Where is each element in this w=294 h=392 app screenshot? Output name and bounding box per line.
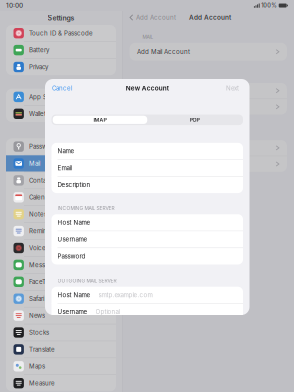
- button[interactable]: Host Name: [51, 287, 243, 303]
- button[interactable]: Translate: [6, 341, 116, 358]
- button[interactable]: Reminders: [6, 223, 116, 239]
- staticText: News: [29, 312, 45, 319]
- staticText: OUTGOING MAIL SERVER: [57, 278, 116, 284]
- button[interactable]: Account: [129, 156, 287, 172]
- button[interactable]: Contacts: [6, 172, 116, 189]
- staticText: Username: [57, 236, 87, 243]
- button[interactable]: Account: [129, 83, 287, 98]
- staticText: Contacts: [29, 177, 55, 184]
- button[interactable]: POP: [147, 116, 242, 124]
- staticText: Username: [57, 308, 87, 315]
- button[interactable]: Password: [51, 248, 243, 264]
- staticText: Email: [57, 164, 71, 172]
- staticText: Next: [226, 84, 239, 92]
- button[interactable]: News: [6, 307, 116, 324]
- button[interactable]: Maps: [6, 358, 116, 374]
- button[interactable]: Host Name: [51, 214, 243, 231]
- staticText: Calendar: [29, 194, 54, 201]
- staticText: Touch ID & Passcode: [29, 29, 93, 37]
- staticText: MAIL: [142, 34, 153, 40]
- button[interactable]: Next: [221, 80, 249, 96]
- button[interactable]: Username: [51, 304, 243, 320]
- staticText: Messages: [29, 261, 59, 269]
- button[interactable]: Description: [51, 177, 243, 193]
- staticText: FaceTime: [29, 278, 56, 285]
- staticText: 100%: [261, 2, 277, 9]
- staticText: Notes: [29, 210, 47, 218]
- staticText: Host Name: [57, 291, 90, 299]
- button[interactable]: App Store: [6, 89, 116, 105]
- staticText: Cancel: [52, 84, 72, 92]
- staticText: Translate: [29, 346, 55, 353]
- button[interactable]: Safari: [6, 290, 116, 307]
- staticText: INCOMING MAIL SERVER: [57, 205, 114, 211]
- staticText: Privacy: [29, 63, 48, 71]
- button[interactable]: Voice Memos: [6, 240, 116, 256]
- button[interactable]: Add Mail Account: [129, 43, 287, 61]
- button[interactable]: Cancel: [45, 80, 77, 96]
- staticText: Add Account: [189, 14, 231, 21]
- staticText: Reminders: [29, 227, 60, 235]
- staticText: Add Account: [136, 14, 176, 21]
- staticText: App Store: [29, 93, 59, 101]
- staticText: POP: [189, 117, 199, 123]
- button[interactable]: Username: [51, 231, 243, 248]
- staticText: Description: [57, 181, 90, 188]
- button[interactable]: Name: [51, 143, 243, 159]
- button[interactable]: Mail: [6, 155, 116, 172]
- button[interactable]: Notes: [6, 206, 116, 222]
- staticText: Name: [57, 147, 74, 155]
- staticText: Optional: [95, 308, 119, 315]
- staticText: IMAP: [93, 117, 106, 123]
- button[interactable]: Calendar: [6, 189, 116, 205]
- staticText: Stocks: [29, 329, 49, 336]
- staticText: 10:00: [6, 2, 23, 9]
- staticText: Add Mail Account: [137, 48, 190, 55]
- button[interactable]: Account: [129, 140, 287, 156]
- staticText: Safari: [29, 295, 44, 302]
- staticText: Password: [57, 252, 85, 260]
- staticText: Wallet: [29, 110, 46, 117]
- button[interactable]: Messages: [6, 257, 116, 273]
- button[interactable]: Email: [51, 160, 243, 176]
- staticText: smtp.example.com: [98, 291, 152, 299]
- staticText: Voice Memos: [29, 244, 70, 252]
- staticText: New Account: [126, 84, 169, 92]
- staticText: Mail: [29, 160, 40, 167]
- button[interactable]: Wallet: [6, 106, 116, 122]
- button[interactable]: Stocks: [6, 324, 116, 341]
- staticText: Battery: [29, 46, 49, 54]
- button[interactable]: Measure: [6, 375, 116, 391]
- staticText: Passwords: [29, 143, 60, 150]
- button[interactable]: Passwords: [6, 138, 116, 155]
- button[interactable]: Privacy: [6, 59, 116, 75]
- staticText: Host Name: [57, 219, 90, 226]
- button[interactable]: Account: [129, 99, 287, 115]
- button[interactable]: Touch ID & Passcode: [6, 25, 116, 41]
- button[interactable]: FaceTime: [6, 274, 116, 290]
- button[interactable]: Battery: [6, 42, 116, 58]
- button[interactable]: Add Account: [129, 10, 189, 25]
- staticText: Maps: [29, 363, 45, 370]
- staticText: Settings: [47, 14, 74, 22]
- button[interactable]: IMAP: [53, 116, 147, 124]
- staticText: Measure: [29, 379, 55, 387]
